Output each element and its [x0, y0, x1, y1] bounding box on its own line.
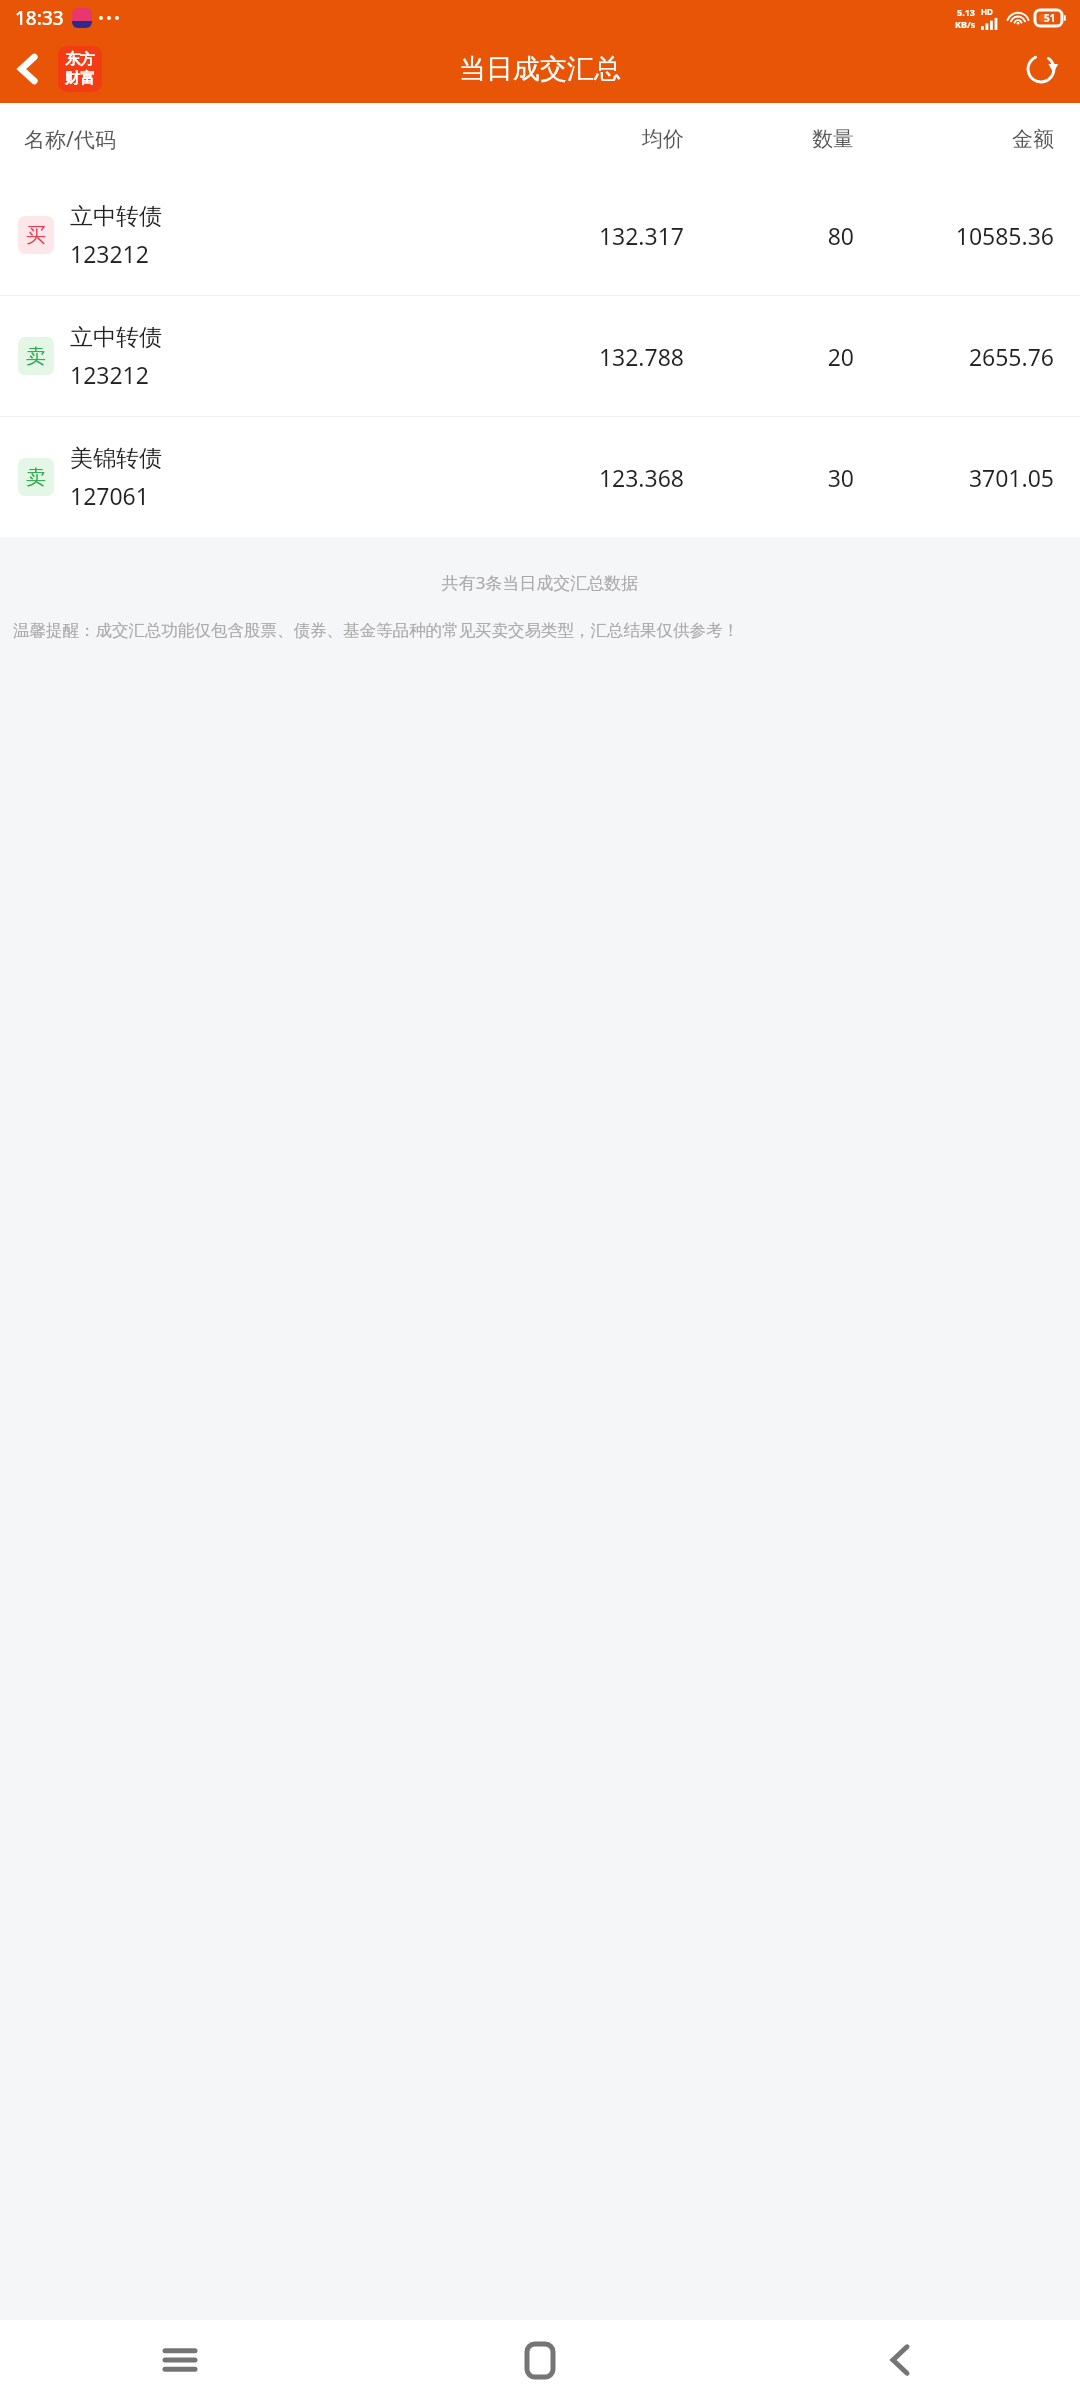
- staticText: 买: [26, 223, 46, 248]
- staticText: 立中转债: [70, 202, 162, 231]
- staticText: 18:33: [15, 5, 64, 31]
- staticText: 名称/代码: [24, 125, 499, 154]
- button[interactable]: Home: [360, 2320, 720, 2400]
- button[interactable]: 买: [0, 175, 1080, 295]
- staticText: 2655.76: [854, 341, 1054, 372]
- button[interactable]: Back: [0, 41, 56, 97]
- staticText: 5.13: [957, 6, 975, 18]
- staticText: 3701.05: [854, 462, 1054, 493]
- button[interactable]: Back: [720, 2320, 1080, 2400]
- staticText: 立中转债: [70, 323, 162, 352]
- button[interactable]: 东方财富: [58, 46, 102, 92]
- staticText: 金额: [854, 126, 1054, 152]
- staticText: 123212: [70, 238, 149, 269]
- button[interactable]: Refresh: [1012, 40, 1070, 98]
- button[interactable]: Recents: [0, 2320, 360, 2400]
- staticText: 80: [684, 220, 854, 251]
- staticText: 20: [684, 341, 854, 372]
- button[interactable]: 卖: [0, 417, 1080, 537]
- staticText: 卖: [26, 465, 46, 490]
- staticText: 当日成交汇总: [459, 52, 621, 86]
- staticText: 财富: [65, 69, 95, 88]
- staticText: 51: [1044, 11, 1056, 25]
- staticText: 127061: [70, 480, 149, 511]
- staticText: 卖: [26, 344, 46, 369]
- staticText: KB/s: [955, 18, 976, 30]
- staticText: 132.317: [499, 220, 684, 251]
- staticText: 美锦转债: [70, 444, 162, 473]
- staticText: 均价: [499, 126, 684, 152]
- staticText: 共有3条当日成交汇总数据: [0, 571, 1080, 594]
- staticText: 123212: [70, 359, 149, 390]
- staticText: 东方: [65, 50, 95, 69]
- button[interactable]: 卖: [0, 296, 1080, 416]
- staticText: 30: [684, 462, 854, 493]
- staticText: 123.368: [499, 462, 684, 493]
- staticText: 数量: [684, 126, 854, 152]
- staticText: 温馨提醒：成交汇总功能仅包含股票、债券、基金等品种的常见买卖交易类型，汇总结果仅…: [13, 620, 1067, 641]
- staticText: 10585.36: [854, 220, 1054, 251]
- staticText: HD: [981, 6, 993, 17]
- staticText: 132.788: [499, 341, 684, 372]
